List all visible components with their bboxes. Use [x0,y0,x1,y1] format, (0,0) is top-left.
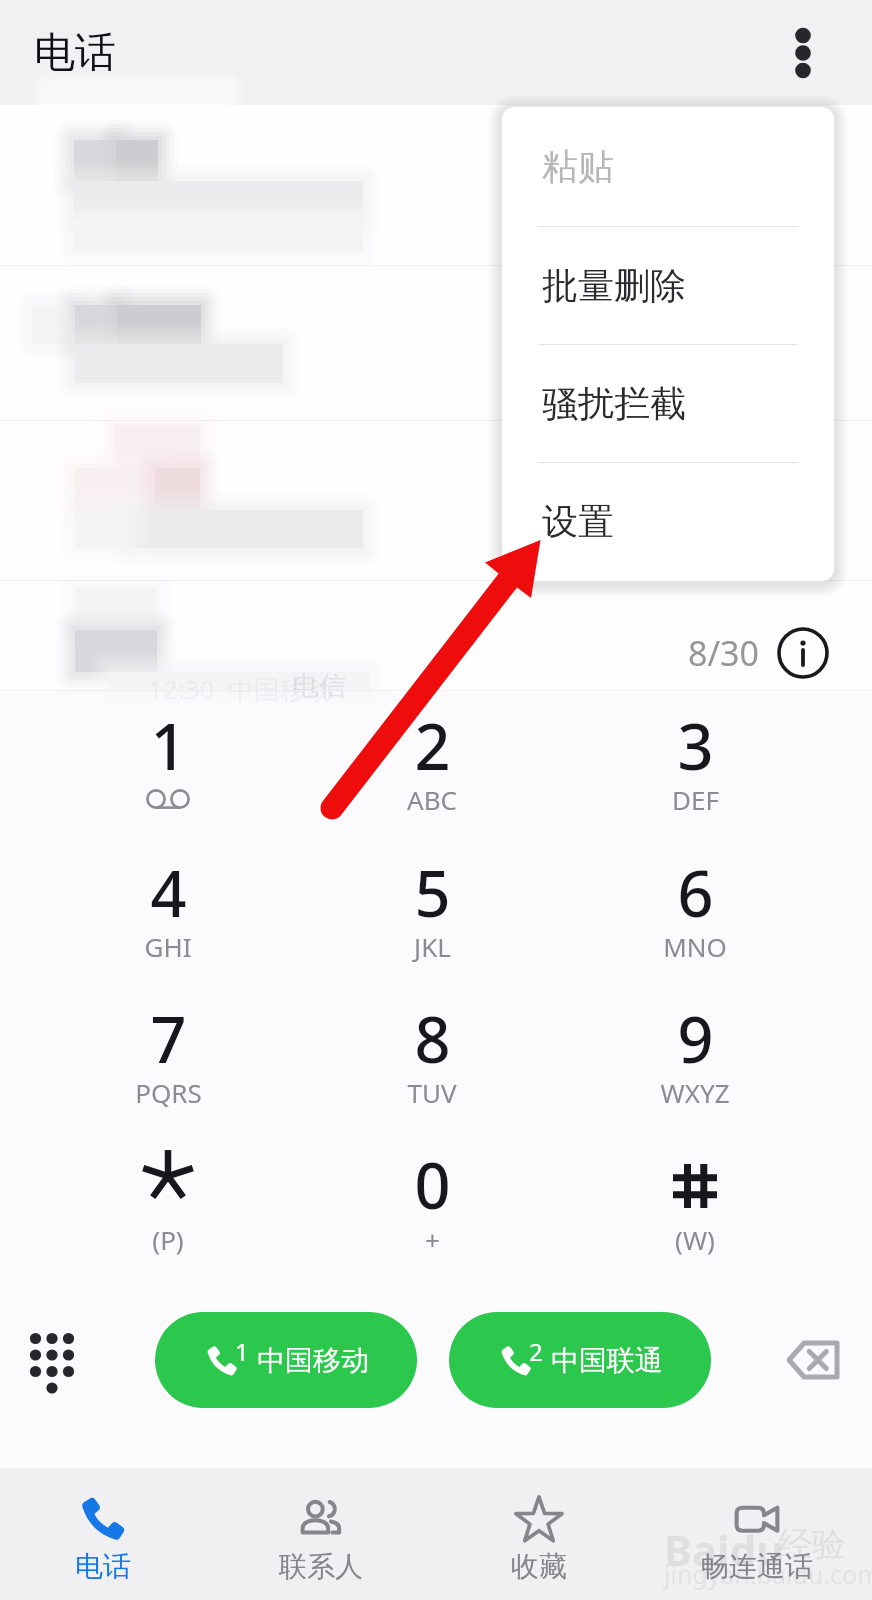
staticText: 2 [414,703,451,789]
button[interactable] [585,822,805,966]
button[interactable]: 设置 [502,463,834,580]
staticText: 中国联通 [551,1343,663,1378]
staticText: 畅连通话 [701,1549,813,1584]
button[interactable] [585,968,805,1112]
staticText: 8 [414,996,451,1082]
button[interactable]: Backspace [773,1320,853,1400]
staticText: WXYZ [660,1075,730,1110]
button[interactable]: Keypad [12,1320,92,1400]
staticText: MNO [663,929,727,964]
button[interactable] [58,1114,278,1258]
staticText: + [425,1222,440,1257]
button[interactable] [0,107,872,265]
button[interactable]: 2 [449,1312,711,1408]
button[interactable]: 粘贴 [502,107,834,226]
staticText: 1 [150,703,187,789]
button[interactable]: Info [777,627,829,679]
staticText: (P) [152,1222,184,1257]
staticText: 4 [150,850,187,936]
staticText: 6 [677,850,714,936]
button[interactable] [322,968,542,1112]
staticText: GHI [144,929,192,964]
button[interactable] [585,1114,805,1258]
button[interactable]: 联系人 [218,1468,436,1600]
staticText: 中国移动 [257,1343,369,1378]
staticText: 8/30 [688,630,759,676]
staticText: Baidu [664,1521,784,1578]
staticText: 0 [414,1142,451,1228]
staticText: 电话 [34,27,116,79]
staticText: 5 [414,850,451,936]
staticText: JKL [414,929,451,964]
staticText: 9 [677,996,714,1082]
button[interactable] [0,265,872,420]
staticText: 1 [235,1335,249,1368]
button[interactable]: 收藏 [436,1468,654,1600]
staticText: 电话 [75,1549,131,1584]
staticText: PQRS [135,1075,202,1110]
staticText: 电信 [292,669,346,703]
staticText: 经验 [778,1523,846,1566]
button[interactable] [0,420,872,580]
button[interactable] [322,675,542,819]
staticText: 2 [529,1335,543,1368]
staticText: 7 [150,996,187,1082]
staticText: 3 [677,703,714,789]
staticText: 设置 [542,499,614,544]
button[interactable] [585,675,805,819]
button[interactable] [58,968,278,1112]
staticText: ABC [407,782,457,817]
button[interactable] [322,1114,542,1258]
button[interactable] [58,822,278,966]
button[interactable]: 电话 [0,1468,218,1600]
staticText: 联系人 [279,1549,363,1584]
staticText: 粘贴 [542,144,614,189]
staticText: jingyan.baidu.com [664,1557,872,1591]
button[interactable] [0,580,872,690]
button[interactable] [58,675,278,819]
button[interactable]: 1 [155,1312,417,1408]
button[interactable]: More options [772,22,834,84]
staticText: 骚扰拦截 [542,381,686,426]
button[interactable] [322,822,542,966]
button[interactable]: 畅连通话 [654,1468,872,1600]
staticText: DEF [672,782,719,817]
staticText: 批量删除 [542,263,686,308]
staticText: TUV [407,1075,457,1110]
staticText: 12:30 中国移动 [148,671,332,707]
button[interactable]: 骚扰拦截 [502,345,834,462]
button[interactable]: 批量删除 [502,227,834,344]
staticText: 收藏 [511,1549,567,1584]
staticText: (W) [675,1222,715,1257]
